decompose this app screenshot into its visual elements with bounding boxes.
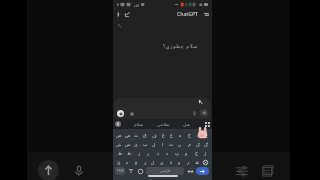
button[interactable]: ط: [125, 149, 133, 157]
staticText: ن: [178, 142, 182, 147]
staticText: س: [125, 142, 131, 147]
button[interactable]: ض: [115, 131, 123, 139]
button[interactable]: ص: [124, 131, 132, 139]
staticText: ر: [147, 151, 150, 156]
staticText: و: [185, 151, 188, 156]
button[interactable]: ت: [167, 140, 175, 148]
button[interactable]: سلام: [134, 122, 144, 127]
staticText: ?123: [117, 169, 124, 173]
staticText: ی: [134, 142, 138, 147]
button[interactable]: ن: [176, 140, 184, 148]
button[interactable]: Add attachment: [117, 110, 124, 117]
staticText: ى: [160, 160, 164, 165]
button[interactable]: سلامی: [157, 122, 170, 127]
button[interactable]: ر: [144, 149, 152, 157]
button[interactable]: Dictate: [191, 110, 198, 117]
staticText: غ: [162, 133, 165, 138]
button[interactable]: ع: [167, 131, 175, 139]
staticText: ش: [116, 142, 122, 147]
button[interactable]: ق: [141, 131, 149, 139]
button[interactable]: ظ: [116, 149, 124, 157]
staticText: ج: [205, 133, 208, 138]
button[interactable]: ة: [167, 158, 175, 166]
button[interactable]: ح: [194, 131, 202, 139]
button[interactable]: ا: [159, 140, 167, 148]
button[interactable]: ر: [141, 158, 149, 166]
button[interactable]: ئ: [115, 158, 123, 166]
button[interactable]: ه: [176, 131, 184, 139]
button[interactable]: ی: [132, 140, 140, 148]
button[interactable]: ز: [135, 149, 143, 157]
button[interactable]: ل: [149, 158, 157, 166]
button[interactable]: Microphone: [69, 161, 88, 180]
staticText: ل: [152, 142, 156, 147]
button[interactable]: ب: [141, 140, 149, 148]
staticText: ه: [179, 133, 182, 138]
button[interactable]: ش: [115, 140, 123, 148]
button[interactable]: Backspace: [201, 158, 210, 166]
button[interactable]: ظ: [193, 158, 201, 166]
staticText: و: [178, 160, 181, 165]
staticText: ؤ: [135, 160, 138, 165]
staticText: ف: [152, 133, 157, 138]
staticText: ک: [196, 142, 201, 147]
staticText: فارسی: [160, 169, 171, 173]
staticText: ح: [197, 133, 200, 138]
staticText: ة: [170, 160, 173, 165]
button[interactable]: Voice input: [115, 121, 121, 127]
button[interactable]: ذ: [154, 149, 162, 157]
staticText: ض: [116, 133, 122, 138]
button[interactable]: Voice mode: [200, 109, 208, 117]
staticText: م: [188, 142, 191, 147]
button[interactable]: پ: [173, 149, 181, 157]
staticText: ل: [151, 160, 155, 165]
button[interactable]: گ: [202, 140, 210, 148]
button[interactable]: ث: [132, 131, 140, 139]
button[interactable]: چ: [192, 149, 200, 157]
staticText: ظ: [118, 151, 123, 156]
staticText: د: [166, 151, 169, 156]
staticText: ت: [169, 142, 174, 147]
button[interactable]: Translate: [128, 168, 134, 174]
button[interactable]: Keyboard settings: [204, 121, 210, 127]
button[interactable]: ف: [150, 131, 158, 139]
button[interactable]: خ: [185, 131, 193, 139]
staticText: خ: [188, 133, 191, 138]
button[interactable]: غ: [159, 131, 167, 139]
button[interactable]: Punctuation: [187, 168, 193, 174]
button[interactable]: ژ: [201, 149, 209, 157]
staticText: ChatGPT: [177, 11, 198, 18]
staticText: ب: [143, 142, 148, 147]
button[interactable]: ?123: [115, 167, 125, 175]
button[interactable]: ل: [150, 140, 158, 148]
staticText: پ: [175, 151, 180, 156]
staticText: ظ: [195, 160, 200, 165]
button[interactable]: ک: [194, 140, 202, 148]
button[interactable]: Tools: [128, 110, 135, 117]
button[interactable]: سل: [183, 122, 191, 127]
button[interactable]: Sidebar: [115, 10, 123, 18]
button[interactable]: More options: [202, 10, 210, 18]
button[interactable]: Filters: [232, 161, 251, 180]
button[interactable]: ز: [184, 158, 192, 166]
button[interactable]: ؤ: [132, 158, 140, 166]
staticText: ز: [138, 151, 141, 156]
button[interactable]: Emoji: [137, 168, 143, 174]
staticText: ر: [144, 160, 147, 165]
button[interactable]: س: [124, 140, 132, 148]
button[interactable]: ء: [123, 158, 131, 166]
button[interactable]: فارسی: [146, 167, 184, 175]
button[interactable]: م: [185, 140, 193, 148]
button[interactable]: ج: [202, 131, 210, 139]
button[interactable]: Send: [196, 167, 209, 175]
button[interactable]: و: [182, 149, 190, 157]
staticText: گ: [204, 142, 209, 147]
staticText: ز: [187, 160, 190, 165]
button[interactable]: و: [175, 158, 183, 166]
staticText: ا: [162, 142, 164, 147]
button[interactable]: New chat: [123, 10, 131, 18]
button[interactable]: ى: [158, 158, 166, 166]
button[interactable]: Screenshot: [258, 161, 277, 180]
button[interactable]: Share: [38, 160, 59, 180]
button[interactable]: د: [163, 149, 171, 157]
